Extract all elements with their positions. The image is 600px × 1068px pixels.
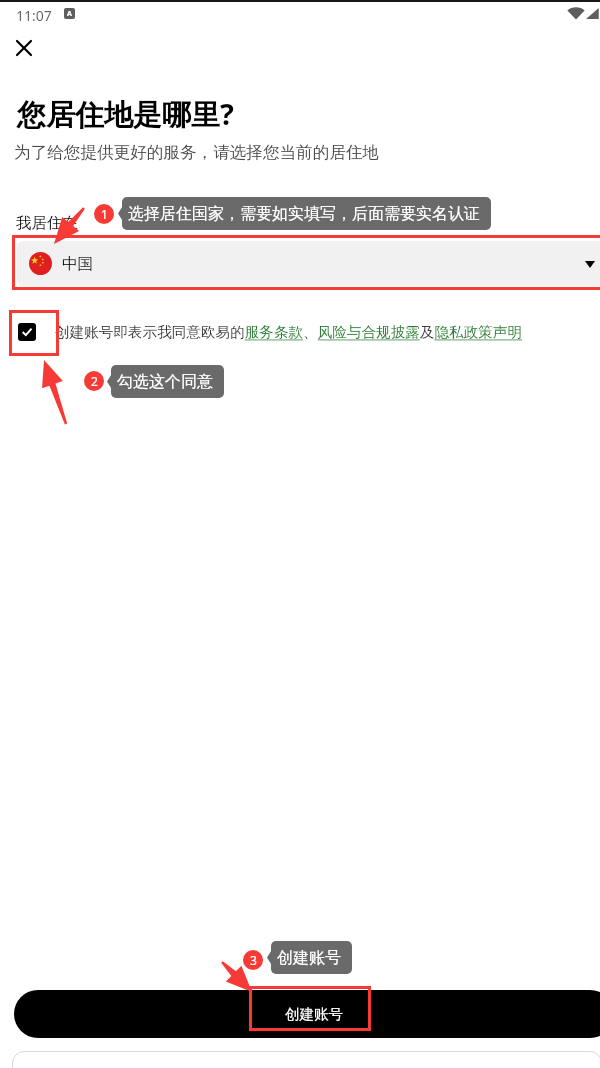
staticText: 创建账号 [285, 1005, 343, 1023]
button[interactable]: 中国 [17, 241, 600, 286]
staticText: A [67, 9, 72, 19]
staticText: 选择居住国家，需要如实填写，后面需要实名认证 [128, 204, 480, 224]
button[interactable]: 创建账号即表示我同意欧易的服务条款、风险与合规披露及隐私政策声明 [55, 323, 522, 341]
staticText: 2 [91, 373, 98, 389]
button[interactable]: Close [4, 28, 44, 68]
button[interactable]: 创建账号 [14, 990, 600, 1038]
staticText: 1 [101, 206, 108, 222]
staticText: 我居住在 [16, 213, 78, 233]
staticText: 创建账号 [277, 948, 341, 968]
staticText: 勾选这个同意 [117, 372, 213, 392]
staticText: 您居住地是哪里? [17, 94, 234, 134]
staticText: 11:07 [16, 6, 52, 25]
staticText: 中国 [62, 254, 93, 274]
staticText: 为了给您提供更好的服务，请选择您当前的居住地 [14, 142, 380, 163]
staticText: 3 [250, 952, 257, 968]
button[interactable]: Agree to terms [18, 323, 36, 341]
